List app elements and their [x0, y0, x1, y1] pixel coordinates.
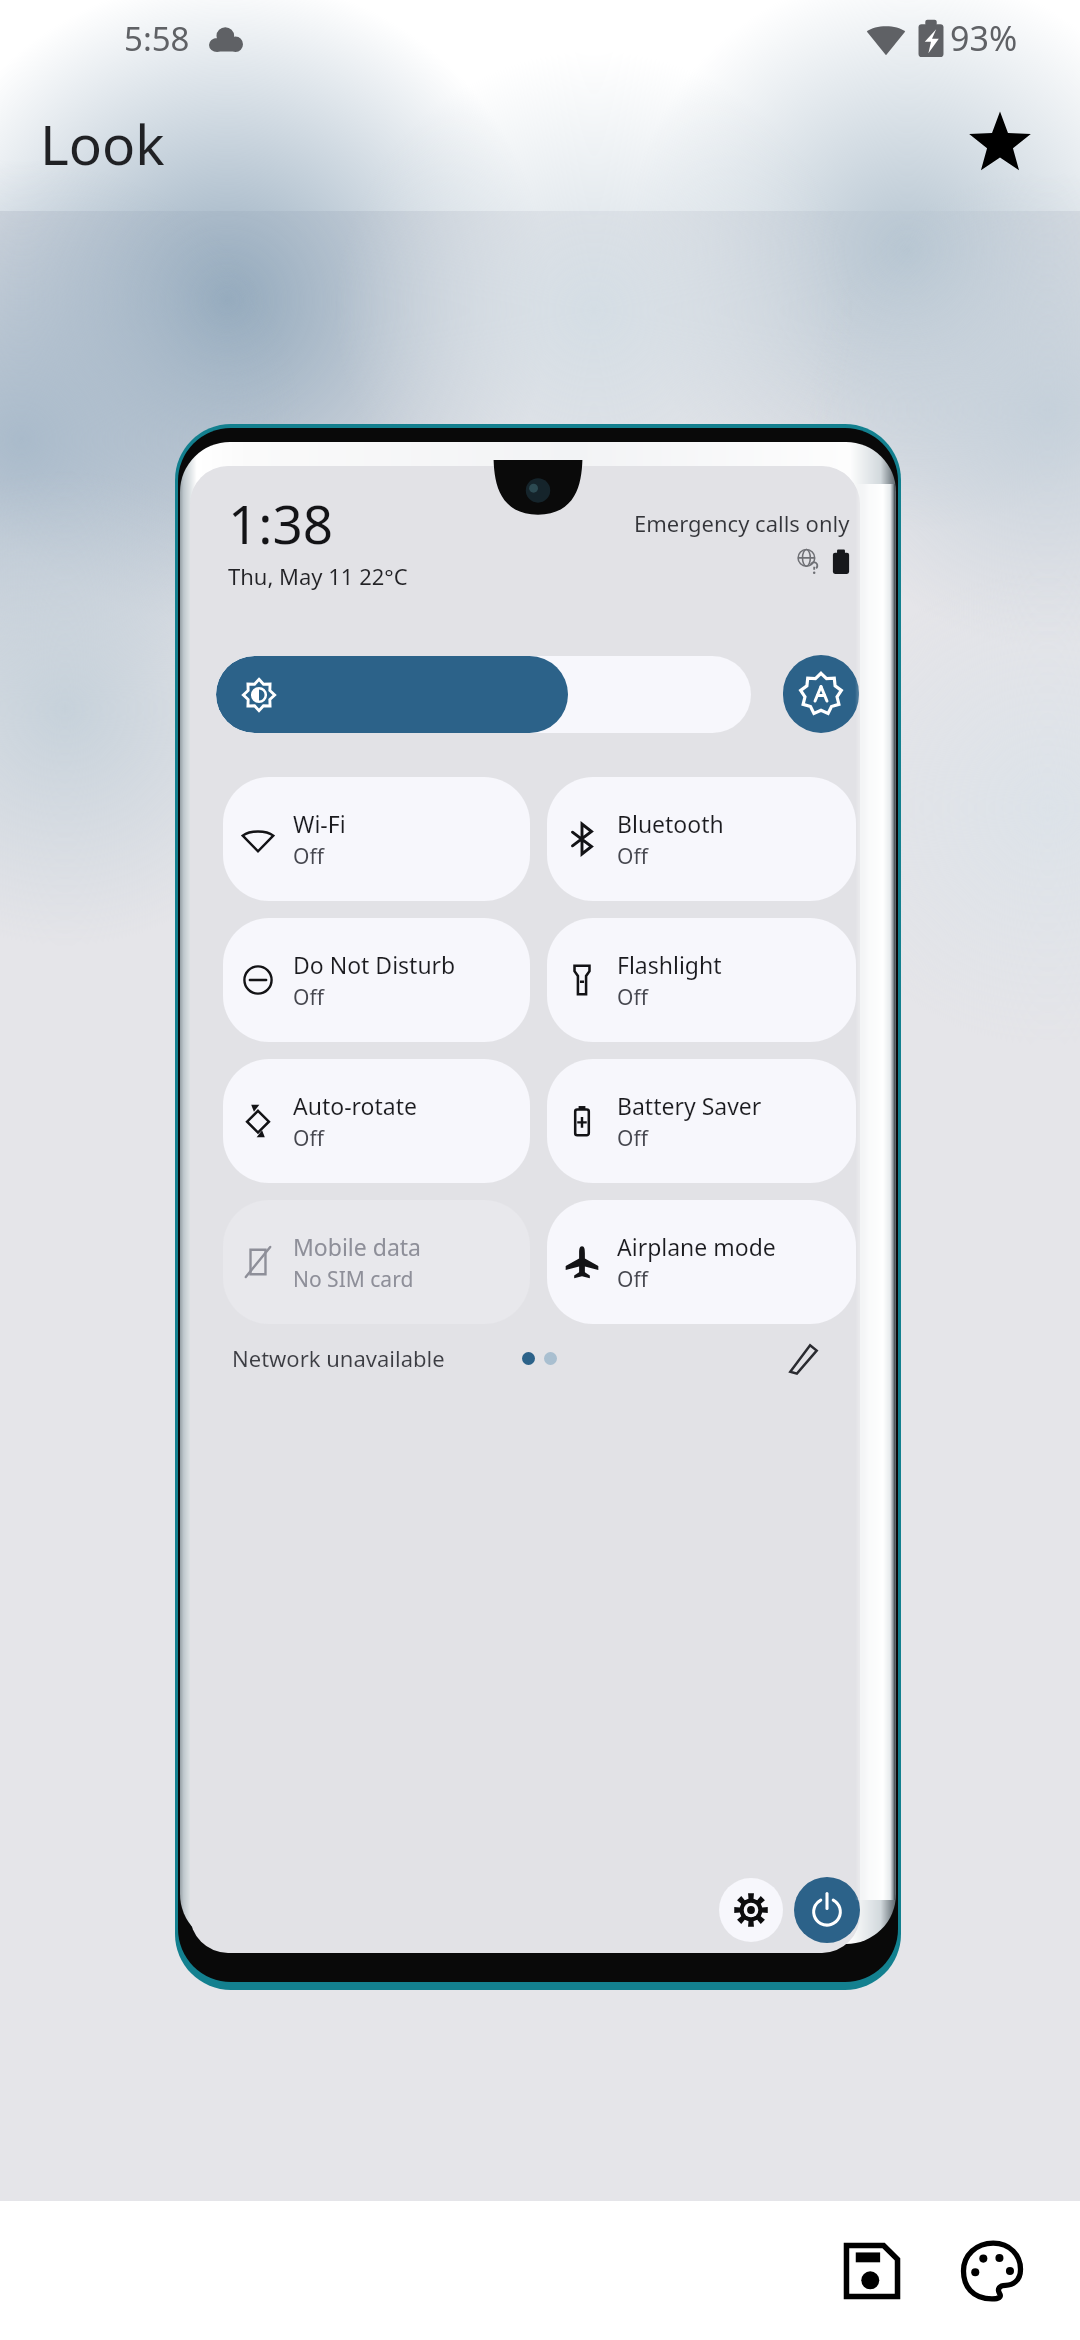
staticText: Network unavailable	[232, 1343, 445, 1373]
button[interactable]: Battery Saver	[547, 1059, 856, 1183]
staticText: Off	[617, 842, 648, 871]
button[interactable]: Auto brightness	[783, 655, 859, 733]
button[interactable]: Flashlight	[547, 918, 856, 1042]
staticText: Off	[617, 1265, 648, 1294]
staticText: Look	[40, 106, 165, 181]
staticText: Off	[293, 1124, 324, 1153]
staticText: Bluetooth	[617, 808, 724, 839]
button[interactable]: Edit tiles	[773, 1328, 833, 1388]
staticText: Wi-Fi	[293, 808, 346, 839]
button[interactable]: Bluetooth	[547, 777, 856, 901]
staticText: Battery Saver	[617, 1090, 762, 1121]
staticText: 1:38	[228, 487, 334, 559]
staticText: 5:58	[124, 16, 190, 61]
staticText: Auto-rotate	[293, 1090, 417, 1121]
staticText: Mobile data	[293, 1231, 421, 1262]
staticText: Off	[617, 1124, 648, 1153]
staticText: No SIM card	[293, 1265, 414, 1294]
button[interactable]: Palette	[932, 2211, 1052, 2331]
staticText: Off	[617, 983, 648, 1012]
staticText: Off	[293, 983, 324, 1012]
button[interactable]: Power	[794, 1877, 860, 1943]
staticText: 93%	[950, 15, 1018, 61]
staticText: Do Not Disturb	[293, 949, 456, 980]
button[interactable]: Auto-rotate	[223, 1059, 530, 1183]
staticText: Flashlight	[617, 949, 722, 980]
button[interactable]: Settings	[719, 1878, 783, 1942]
button[interactable]: Save	[812, 2211, 932, 2331]
staticText: Off	[293, 842, 324, 871]
staticText: Emergency calls only	[634, 508, 850, 538]
staticText: Airplane mode	[617, 1231, 776, 1262]
staticText: Thu, May 11 22°C	[228, 561, 408, 591]
button[interactable]: Brightness	[216, 656, 751, 733]
button[interactable]: Airplane mode	[547, 1200, 856, 1324]
button[interactable]: Wi-Fi	[223, 777, 530, 901]
button[interactable]: Do Not Disturb	[223, 918, 530, 1042]
button[interactable]: Favorite	[945, 89, 1055, 199]
button[interactable]: Mobile data	[223, 1200, 530, 1324]
